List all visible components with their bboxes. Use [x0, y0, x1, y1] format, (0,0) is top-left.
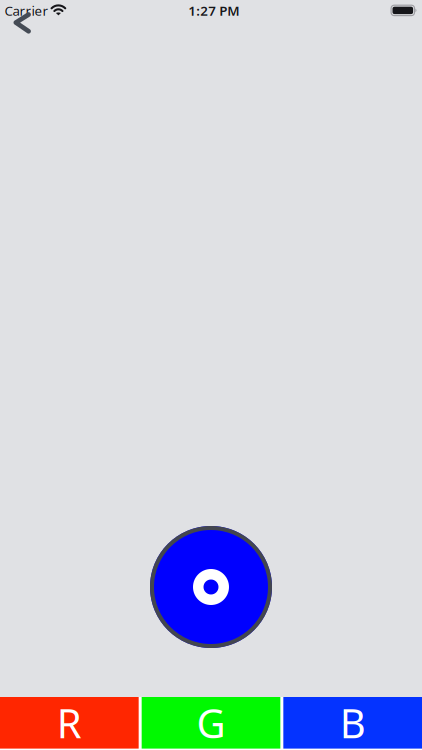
staticText: Carrier — [5, 2, 49, 19]
staticText: R — [57, 696, 82, 749]
button[interactable]: G — [142, 697, 280, 749]
staticText: 1:27 PM — [188, 2, 239, 19]
button[interactable]: B — [283, 697, 422, 749]
button[interactable]: Back — [2, 6, 42, 40]
button[interactable]: R — [0, 697, 139, 749]
staticText: B — [340, 696, 366, 749]
button[interactable]: Record — [150, 526, 272, 648]
staticText: G — [196, 696, 225, 749]
